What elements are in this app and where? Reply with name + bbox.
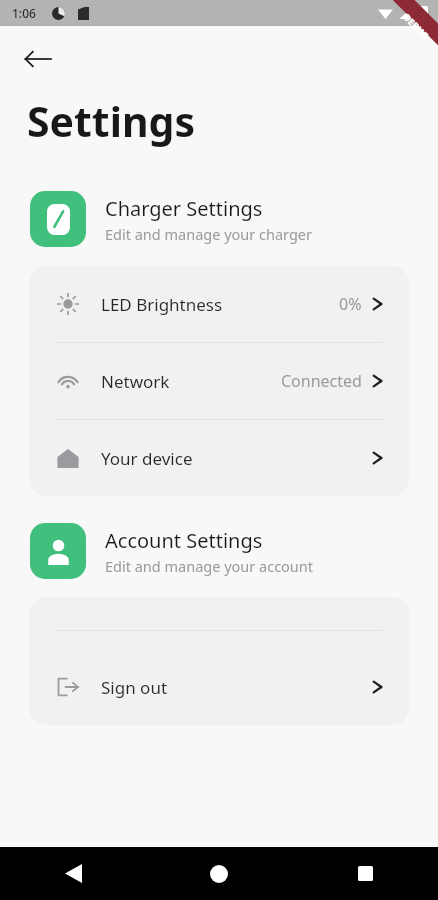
button[interactable]: Network <box>29 343 409 419</box>
staticText: Charger Settings <box>105 195 263 222</box>
button[interactable]: Recent apps <box>292 847 438 900</box>
staticText: Your device <box>101 447 193 470</box>
staticText: Network <box>101 370 170 393</box>
staticText: Account Settings <box>105 527 263 554</box>
button[interactable]: LED Brightness <box>29 266 409 342</box>
button[interactable]: Back <box>14 35 62 83</box>
staticText: Settings <box>27 93 196 149</box>
staticText: Edit and manage your charger <box>105 224 313 244</box>
staticText: 0% <box>339 293 362 315</box>
button[interactable]: Your device <box>29 420 409 496</box>
staticText: Edit and manage your account <box>105 556 314 576</box>
staticText: Connected <box>281 370 362 392</box>
button[interactable]: Back <box>0 847 146 900</box>
button[interactable]: Charger Settings <box>0 191 438 247</box>
button[interactable]: Sign out <box>29 649 409 725</box>
button[interactable]: Account Settings <box>0 523 438 579</box>
staticText: DEBUG <box>401 11 432 41</box>
staticText: LED Brightness <box>101 293 223 316</box>
button[interactable]: Home <box>146 847 292 900</box>
staticText: Sign out <box>101 676 168 699</box>
staticText: 1:06 <box>12 5 36 21</box>
